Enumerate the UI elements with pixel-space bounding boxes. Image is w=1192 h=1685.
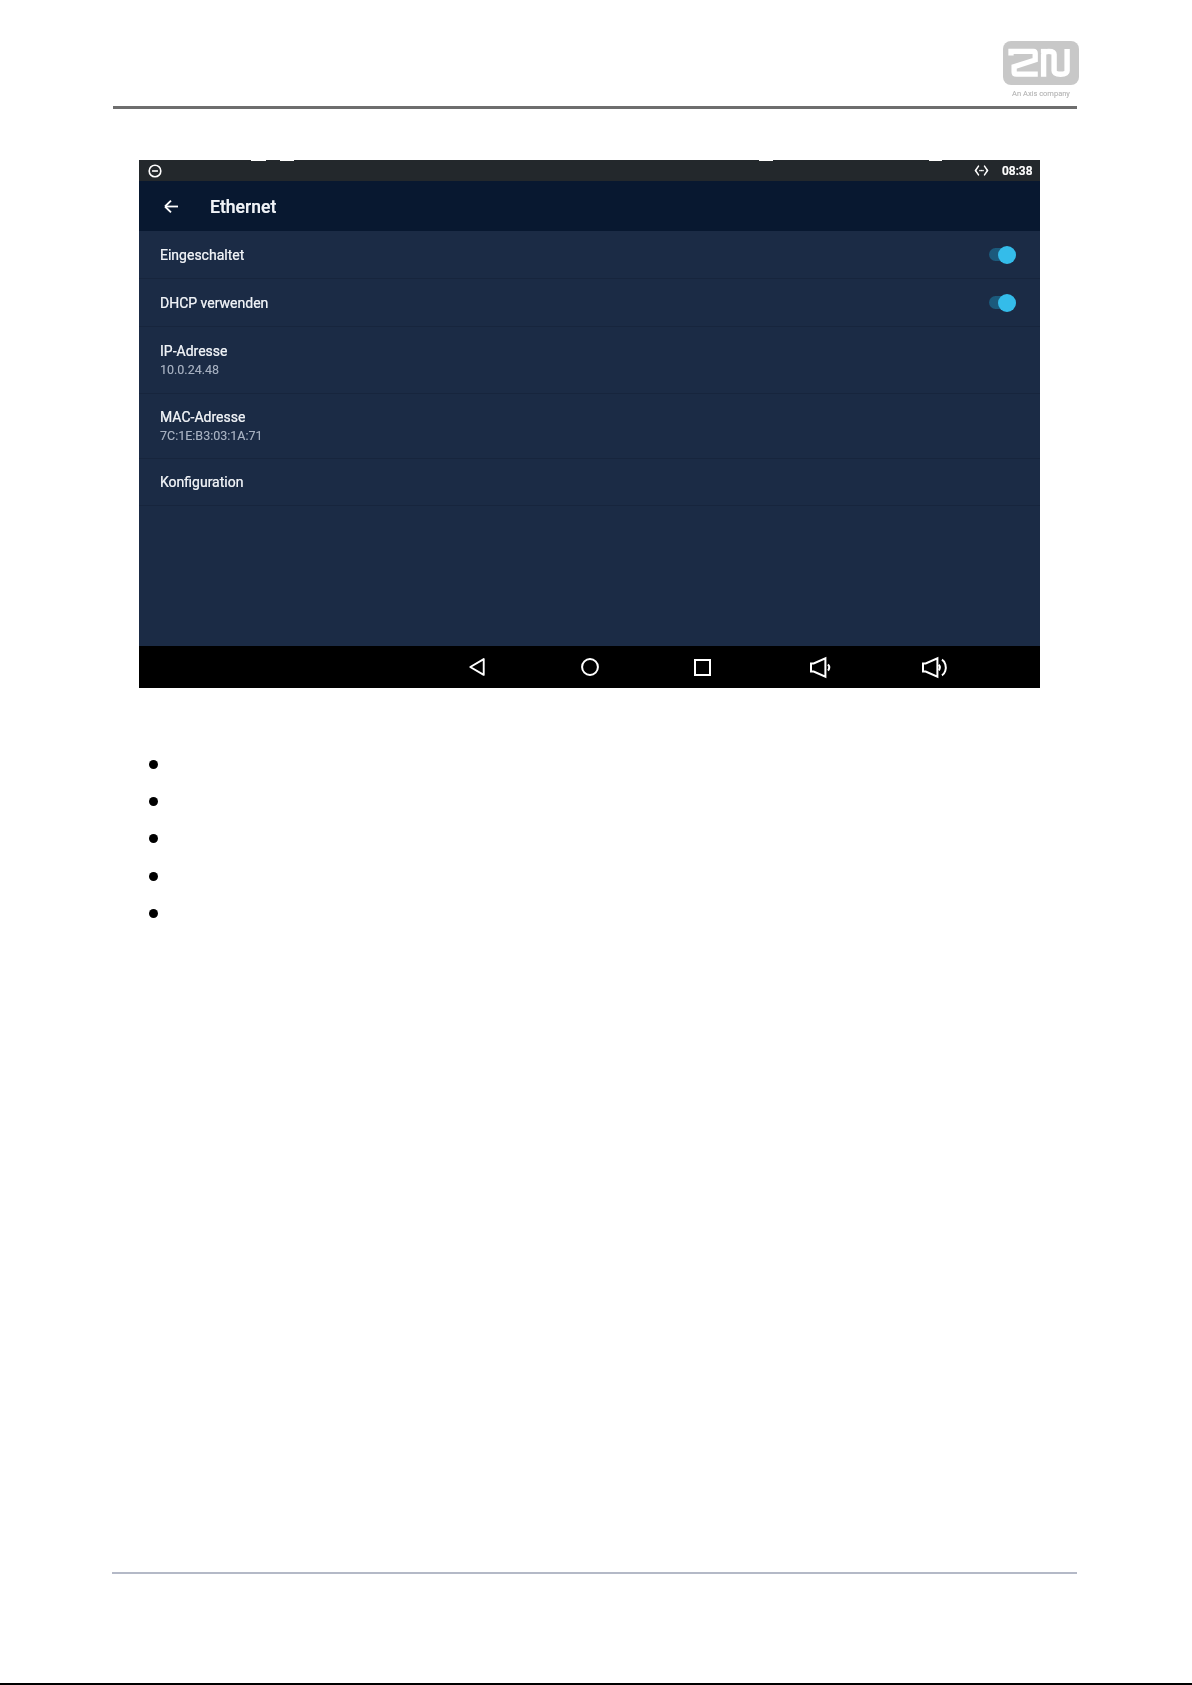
button[interactable]: Volume up (913, 646, 955, 688)
staticText: Eingeschaltet (160, 247, 245, 263)
button[interactable]: Volume down (799, 646, 841, 688)
button[interactable]: Konfiguration (139, 459, 1040, 505)
staticText: 10.0.24.48 (160, 362, 220, 377)
button[interactable]: DHCP verwenden (139, 279, 1040, 326)
staticText: DHCP verwenden (160, 295, 269, 311)
staticText: MAC-Adresse (160, 409, 246, 425)
staticText: 7C:1E:B3:03:1A:71 (160, 428, 263, 443)
staticText: Ethernet (210, 197, 277, 218)
staticText: Konfiguration (160, 474, 244, 490)
button[interactable]: MAC-Adresse (139, 394, 1040, 458)
button[interactable]: Back (456, 646, 498, 688)
button[interactable]: Eingeschaltet (139, 231, 1040, 278)
button[interactable]: IP-Adresse (139, 327, 1040, 393)
staticText: IP-Adresse (160, 343, 228, 359)
staticText: An Axis company (1012, 89, 1070, 98)
button[interactable]: Home (569, 646, 611, 688)
button[interactable]: Back (149, 184, 193, 228)
button[interactable]: Recents (681, 646, 723, 688)
staticText: 08:38 (1002, 164, 1033, 178)
